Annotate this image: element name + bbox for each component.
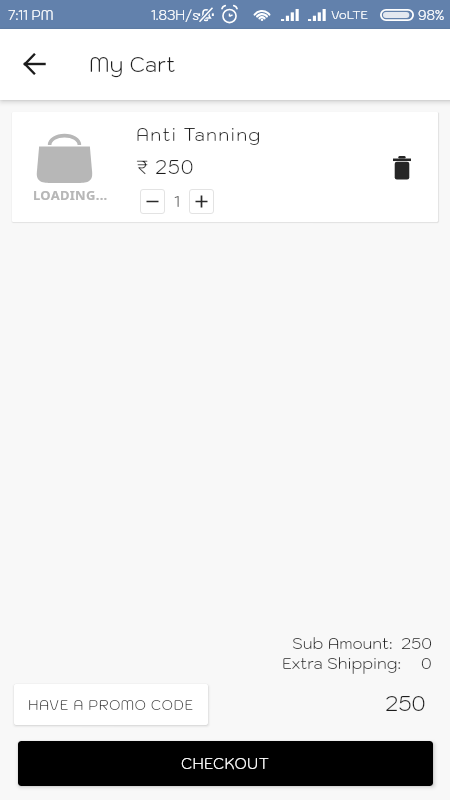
staticText: 98% xyxy=(418,7,445,24)
staticText: Anti Tanning xyxy=(136,123,262,146)
button[interactable]: Delete item xyxy=(382,148,422,188)
staticText: 1 xyxy=(174,191,180,212)
staticText: CHECKOUT xyxy=(181,754,270,774)
button[interactable]: Decrease quantity xyxy=(140,189,165,214)
staticText: Extra Shipping: xyxy=(282,653,401,674)
staticText: HAVE A PROMO CODE xyxy=(28,696,194,714)
button[interactable]: HAVE A PROMO CODE xyxy=(14,684,208,725)
staticText: 250 xyxy=(385,689,426,716)
staticText: ₹ 250 xyxy=(136,155,195,180)
staticText: Sub Amount: xyxy=(292,633,393,654)
staticText: 250 xyxy=(401,633,432,654)
staticText: My Cart xyxy=(89,50,176,77)
staticText: LOADING... xyxy=(33,186,108,204)
staticText: 7:11 PM xyxy=(8,7,54,24)
button[interactable]: LOADING... xyxy=(12,112,438,222)
button[interactable]: Back xyxy=(12,42,56,86)
button[interactable]: Increase quantity xyxy=(189,189,214,214)
button[interactable]: CHECKOUT xyxy=(18,741,433,786)
staticText: 0 xyxy=(421,653,432,674)
staticText: VoLTE xyxy=(331,7,369,23)
staticText: 1.83H/s xyxy=(151,7,199,24)
